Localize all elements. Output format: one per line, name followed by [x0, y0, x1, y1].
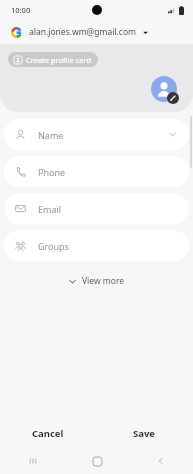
- button[interactable]: Recents: [0, 448, 65, 474]
- button[interactable]: Name: [4, 119, 189, 150]
- button[interactable]: Groups: [4, 230, 189, 261]
- button[interactable]: alan.jones.wm@gmail.com: [0, 20, 193, 44]
- staticText: Create profile card: [26, 55, 92, 65]
- button[interactable]: Phone: [4, 156, 189, 187]
- button[interactable]: Save: [96, 418, 193, 448]
- button[interactable]: Edit profile photo: [151, 76, 179, 104]
- staticText: Email: [38, 203, 62, 215]
- staticText: Cancel: [32, 427, 64, 440]
- staticText: Groups: [38, 240, 69, 252]
- staticText: Phone: [38, 166, 66, 178]
- button[interactable]: View more: [58, 271, 135, 291]
- button[interactable]: Back: [129, 448, 193, 474]
- staticText: Save: [133, 427, 156, 440]
- staticText: 10:00: [11, 5, 31, 15]
- button[interactable]: Home: [65, 448, 129, 474]
- staticText: Name: [38, 129, 64, 141]
- staticText: alan.jones.wm@gmail.com: [29, 26, 137, 38]
- button[interactable]: Cancel: [0, 418, 96, 448]
- staticText: View more: [82, 275, 125, 287]
- button[interactable]: Email: [4, 193, 189, 224]
- button[interactable]: Create profile card: [8, 52, 98, 67]
